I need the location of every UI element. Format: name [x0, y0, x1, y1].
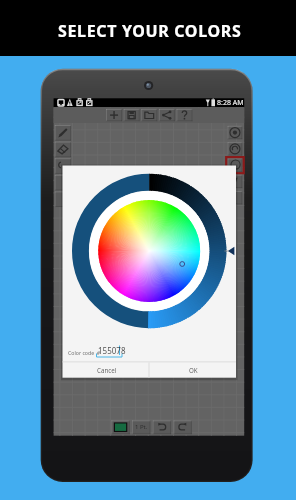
staticText: Color code #: [68, 349, 101, 356]
button[interactable]: Cancel: [63, 362, 150, 378]
staticText: OK: [189, 366, 198, 374]
staticText: 155078: [98, 345, 126, 356]
staticText: 8:28 AM: [217, 98, 244, 108]
staticText: 1 Pt.: [135, 423, 148, 431]
staticText: Cancel: [97, 366, 117, 374]
button[interactable]: OK: [150, 362, 237, 378]
staticText: SELECT YOUR COLORS: [58, 20, 242, 42]
button[interactable]: 1 Pt.: [132, 420, 150, 434]
